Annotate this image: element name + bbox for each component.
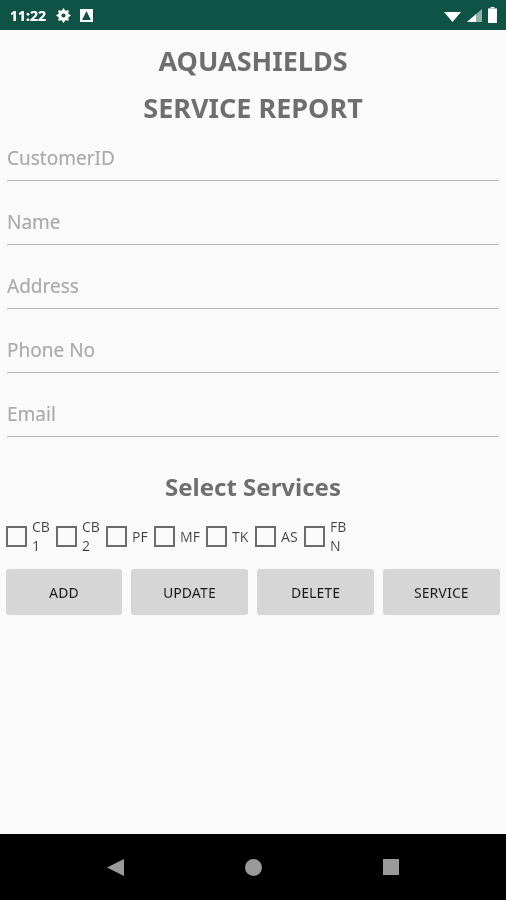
button[interactable]: Address	[0, 264, 506, 328]
staticText: SERVICE	[414, 583, 469, 602]
staticText: AQUASHIELDS	[0, 42, 506, 79]
button[interactable]: TK	[206, 526, 255, 547]
staticText: TK	[232, 527, 249, 546]
staticText: 11:22	[10, 6, 46, 25]
button[interactable]: Name	[0, 200, 506, 264]
staticText: DELETE	[291, 583, 340, 602]
staticText: PF	[132, 527, 148, 546]
button[interactable]: Recent apps	[368, 844, 414, 890]
staticText: 2	[82, 536, 91, 555]
staticText: 1	[32, 536, 41, 555]
staticText: Address	[7, 273, 79, 299]
staticText: Email	[7, 401, 56, 427]
button[interactable]: UPDATE	[131, 569, 248, 615]
button[interactable]: Home	[230, 844, 276, 890]
staticText: SERVICE REPORT	[0, 89, 506, 126]
button[interactable]: Email	[0, 392, 506, 456]
staticText: Select Services	[0, 470, 506, 503]
staticText: MF	[180, 527, 200, 546]
button[interactable]: MF	[154, 526, 206, 547]
button[interactable]: ADD	[6, 569, 122, 615]
staticText: CustomerID	[7, 145, 115, 171]
button[interactable]: SERVICE	[383, 569, 500, 615]
button[interactable]: CB	[6, 517, 56, 555]
button[interactable]: AS	[255, 526, 304, 547]
button[interactable]: FB	[304, 517, 347, 555]
button[interactable]: Phone No	[0, 328, 506, 392]
staticText: UPDATE	[163, 583, 216, 602]
button[interactable]: DELETE	[257, 569, 374, 615]
staticText: Phone No	[7, 337, 96, 363]
staticText: ADD	[49, 583, 79, 602]
staticText: CB	[32, 517, 50, 536]
staticText: CB	[82, 517, 100, 536]
staticText: FB	[330, 517, 347, 536]
staticText: AS	[281, 527, 298, 546]
button[interactable]: CustomerID	[0, 136, 506, 200]
button[interactable]: Back	[92, 844, 138, 890]
button[interactable]: PF	[106, 526, 154, 547]
button[interactable]: CB	[56, 517, 106, 555]
staticText: Name	[7, 209, 61, 235]
staticText: N	[330, 536, 341, 555]
